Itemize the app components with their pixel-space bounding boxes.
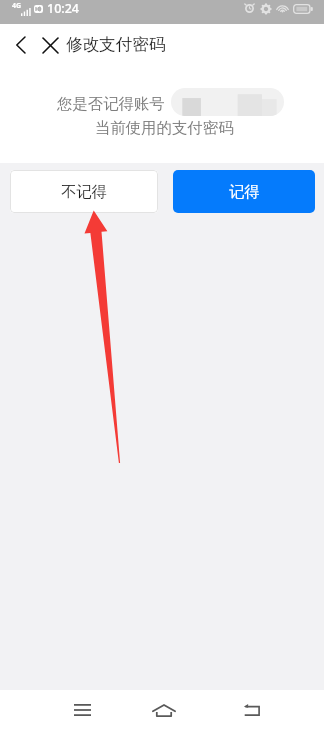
button[interactable]: Home bbox=[138, 690, 190, 730]
button[interactable]: Back bbox=[225, 690, 277, 730]
staticText: 10:24 bbox=[47, 0, 80, 17]
staticText: 不记得 bbox=[61, 182, 107, 201]
button[interactable]: 记得 bbox=[173, 170, 315, 213]
button[interactable]: Back bbox=[8, 33, 32, 57]
staticText: 修改支付密码 bbox=[66, 34, 166, 55]
staticText: 当前使用的支付密码 bbox=[95, 118, 234, 137]
staticText: 记得 bbox=[229, 182, 260, 201]
button[interactable]: Close bbox=[38, 33, 62, 57]
staticText: 4G bbox=[12, 1, 22, 11]
button[interactable]: Recent apps bbox=[56, 690, 108, 730]
staticText: 您是否记得账号 bbox=[57, 94, 165, 113]
button[interactable]: 不记得 bbox=[10, 170, 158, 213]
